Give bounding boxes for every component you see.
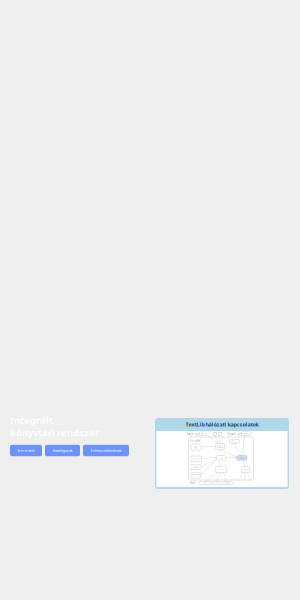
staticText: Távoli	[190, 481, 197, 484]
staticText: kliens	[201, 433, 205, 435]
staticText: router	[218, 457, 223, 459]
staticText: Katalógus	[192, 466, 199, 468]
staticText: Z39.50 kapu	[192, 458, 201, 460]
button[interactable]: Ismertető	[10, 445, 42, 456]
staticText: TextLib szerver	[186, 432, 204, 436]
staticText: könyvtári rendszer	[10, 426, 99, 439]
staticText: Könyvtár	[190, 439, 201, 442]
staticText: Felhasználóinknak	[90, 448, 121, 453]
staticText: Olvasói gép	[227, 432, 243, 436]
staticText: terminál	[225, 482, 230, 484]
staticText: TextLib hálózati kapcsolatok	[185, 421, 258, 428]
staticText: Munkaállomás	[191, 473, 200, 477]
staticText: TextLib	[239, 457, 244, 459]
staticText: SQL szerver	[231, 440, 238, 443]
staticText: hálózat	[243, 469, 248, 470]
staticText: TextLib adatbázis	[216, 445, 223, 448]
staticText: Ismertető	[17, 448, 34, 453]
staticText: PC	[204, 482, 206, 484]
staticText: Katalógusok	[52, 448, 72, 453]
staticText: hálózat	[218, 469, 223, 470]
staticText: WWW kliens	[243, 433, 250, 435]
button[interactable]: Felhasználóinknak	[83, 445, 129, 456]
staticText: Integrált	[10, 414, 53, 426]
staticText: OPAC kliens	[194, 445, 198, 449]
button[interactable]: Katalógusok	[45, 445, 80, 456]
staticText: PC	[215, 482, 217, 484]
